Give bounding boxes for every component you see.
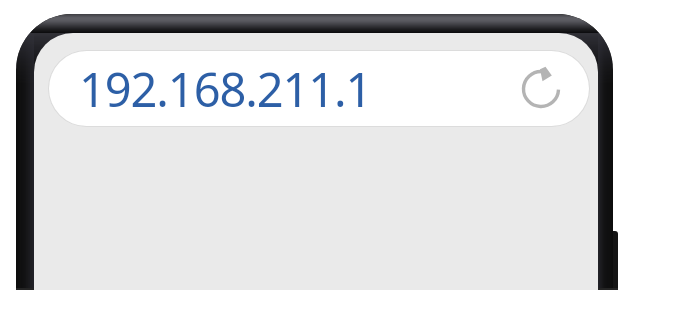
button[interactable]: Reload page [517, 65, 565, 113]
button[interactable]: 192.168.211.1 [49, 51, 589, 126]
staticText: 192.168.211.1 [79, 57, 372, 121]
